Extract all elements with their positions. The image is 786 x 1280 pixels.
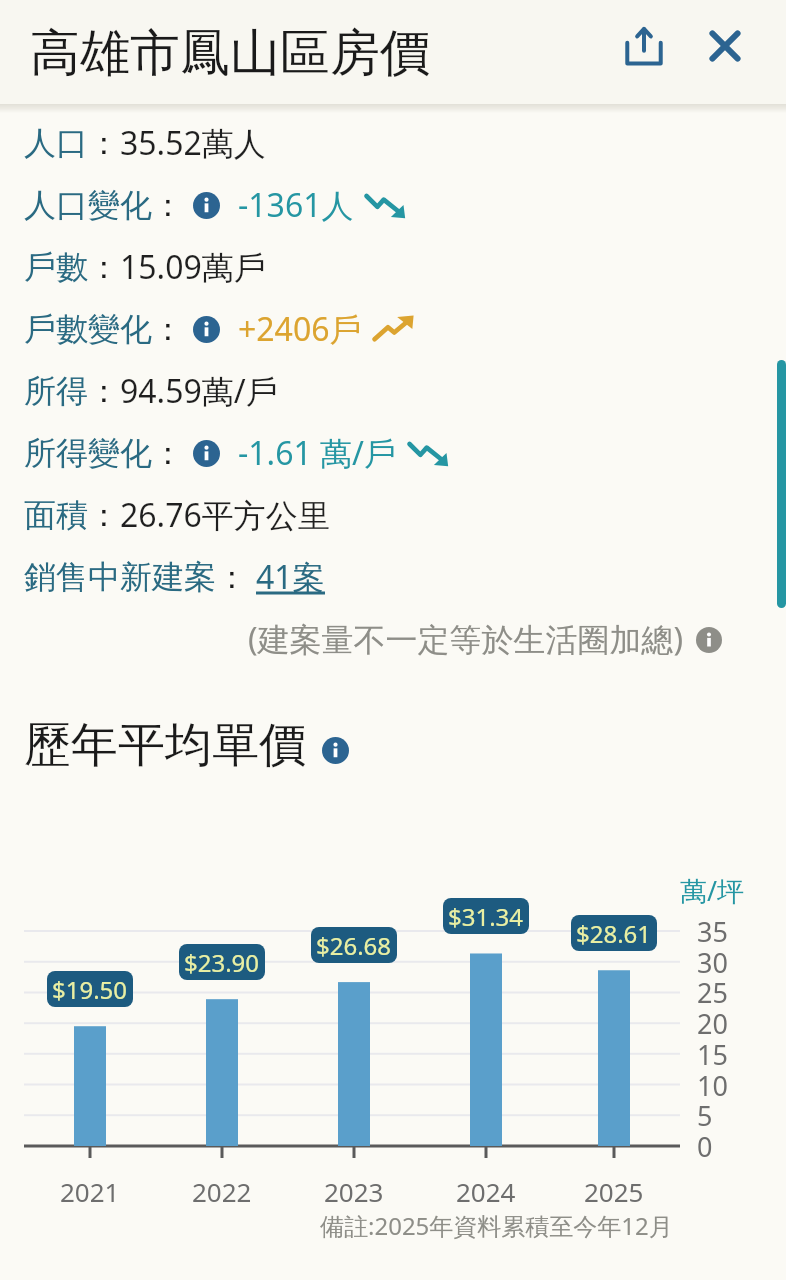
staticText: 2021	[60, 1174, 120, 1209]
staticText: 高雄市鳳山區房價	[30, 22, 430, 85]
button[interactable]: More information	[193, 440, 220, 467]
staticText: 0	[697, 1128, 713, 1165]
staticText: 銷售中新建案	[24, 557, 216, 597]
staticText: 2022	[192, 1174, 252, 1209]
staticText: $28.61	[576, 917, 652, 950]
staticText: 20	[697, 1005, 728, 1042]
staticText: ：	[88, 247, 120, 287]
staticText: 5	[697, 1097, 713, 1134]
staticText: 備註:2025年資料累積至今年12月	[320, 1209, 673, 1242]
button[interactable]: More information	[322, 737, 349, 764]
button[interactable]: More information	[193, 316, 220, 343]
staticText: 戶數	[24, 247, 88, 287]
staticText: 2023	[324, 1174, 384, 1209]
staticText: ：	[88, 123, 120, 163]
button[interactable]: Project count note	[696, 627, 722, 653]
staticText: 人口變化	[24, 185, 152, 225]
staticText: -1361人	[238, 183, 354, 227]
button[interactable]: 41案	[256, 555, 325, 599]
staticText: $31.34	[448, 900, 524, 933]
staticText: +2406戶	[238, 307, 362, 351]
staticText: 2024	[456, 1174, 516, 1209]
staticText: 26.76平方公里	[120, 493, 330, 537]
staticText: 41案	[256, 555, 325, 599]
staticText: 面積	[24, 495, 88, 535]
staticText: $26.68	[316, 929, 392, 962]
staticText: ：	[152, 433, 184, 473]
button[interactable]: Share	[613, 15, 675, 77]
staticText: -1.61 萬/戶	[238, 431, 397, 475]
staticText: 10	[697, 1067, 728, 1104]
staticText: ：	[88, 495, 120, 535]
staticText: 2025	[584, 1174, 644, 1209]
staticText: (建案量不一定等於生活圈加總)	[248, 617, 684, 661]
staticText: 人口	[24, 123, 88, 163]
staticText: 94.59萬/戶	[120, 369, 278, 413]
button[interactable]: Close	[694, 15, 756, 77]
staticText: 所得	[24, 371, 88, 411]
staticText: ：	[152, 185, 184, 225]
staticText: 萬/坪	[680, 872, 745, 909]
staticText: 所得變化	[24, 433, 152, 473]
staticText: 15	[697, 1036, 728, 1073]
staticText: $23.90	[184, 946, 260, 979]
staticText: 35	[697, 913, 728, 950]
staticText: $19.50	[52, 973, 128, 1006]
staticText: 30	[697, 944, 728, 981]
staticText: 歷年平均單價	[24, 716, 306, 775]
staticText: ：	[88, 371, 120, 411]
staticText: ：	[152, 309, 184, 349]
button[interactable]: More information	[193, 192, 220, 219]
staticText: ：	[216, 557, 248, 597]
staticText: 25	[697, 974, 728, 1011]
staticText: 戶數變化	[24, 309, 152, 349]
staticText: 35.52萬人	[120, 121, 266, 165]
staticText: 15.09萬戶	[120, 245, 266, 289]
